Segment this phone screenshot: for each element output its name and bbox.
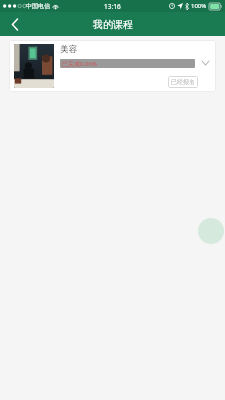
staticText: 已经报名 — [171, 78, 195, 86]
button[interactable]: Back — [0, 12, 30, 36]
button[interactable]: 已经报名 — [171, 78, 195, 86]
staticText: 13:16 — [104, 2, 121, 11]
staticText: 100% — [191, 2, 207, 10]
button[interactable]: 美容 — [9, 40, 216, 92]
staticText: 我的课程 — [93, 18, 133, 31]
staticText: 美容 — [60, 44, 77, 55]
staticText: 中国电信 — [26, 2, 50, 10]
staticText: 已完成0.06% — [62, 60, 97, 68]
button[interactable]: Assistant — [198, 218, 224, 244]
button[interactable]: Expand — [199, 57, 211, 69]
